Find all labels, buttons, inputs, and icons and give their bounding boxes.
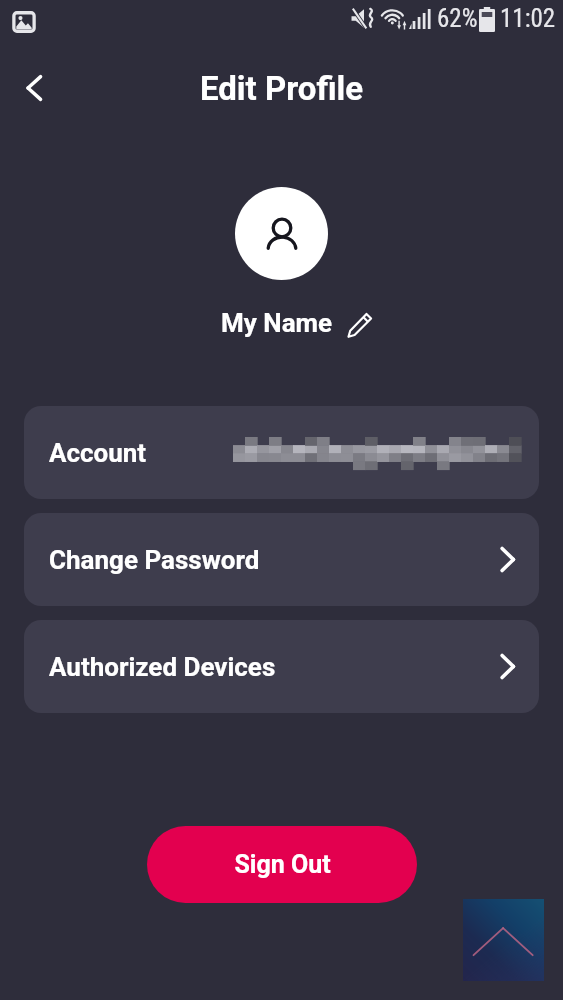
staticText: Change Password	[49, 545, 260, 575]
staticText: 11:02	[500, 4, 556, 33]
button[interactable]: Edit name	[343, 309, 375, 341]
button[interactable]: Profile photo	[235, 187, 328, 280]
staticText: 62%	[437, 4, 478, 33]
button[interactable]: Sign Out	[147, 826, 417, 903]
staticText: Edit Profile	[200, 69, 364, 108]
staticText: My Name	[221, 308, 333, 338]
button[interactable]: Screen recorder overlay	[463, 899, 544, 981]
button[interactable]: Change Password	[24, 513, 539, 606]
button[interactable]: Account	[24, 406, 539, 499]
staticText: Account	[49, 438, 147, 468]
button[interactable]: Back	[10, 64, 58, 112]
staticText: Authorized Devices	[49, 652, 276, 682]
button[interactable]: Authorized Devices	[24, 620, 539, 713]
staticText: Sign Out	[234, 850, 331, 879]
